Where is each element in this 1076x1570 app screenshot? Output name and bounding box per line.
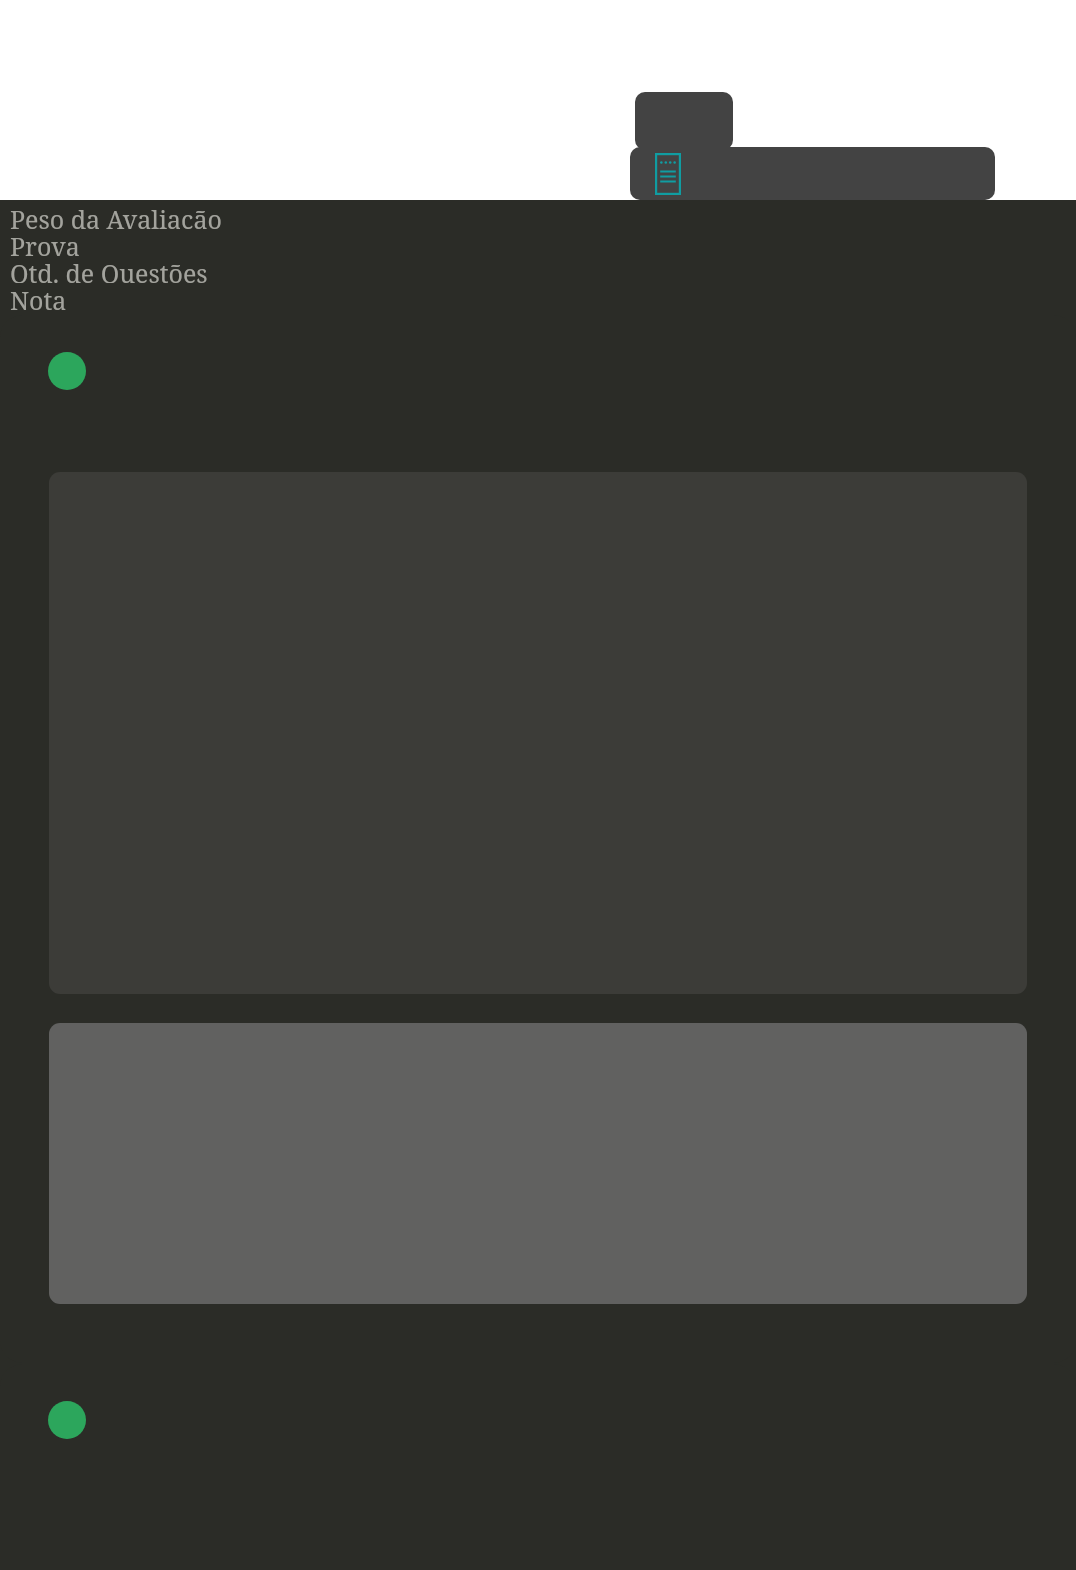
button[interactable]: Nota xyxy=(10,283,67,310)
button[interactable]: Status xyxy=(48,1401,86,1439)
button[interactable]: Peso da Avaliação xyxy=(10,202,222,229)
button[interactable]: Status xyxy=(0,1364,1076,1570)
button[interactable]: Prova xyxy=(10,229,80,256)
other: Avaliação xyxy=(655,153,681,195)
button[interactable]: Status xyxy=(48,352,86,390)
button[interactable]: Tab xyxy=(635,92,733,150)
button[interactable]: Qtd. de Questões xyxy=(10,256,208,283)
button[interactable]: Avaliação xyxy=(630,147,995,200)
button[interactable]: Status xyxy=(0,315,1076,1363)
